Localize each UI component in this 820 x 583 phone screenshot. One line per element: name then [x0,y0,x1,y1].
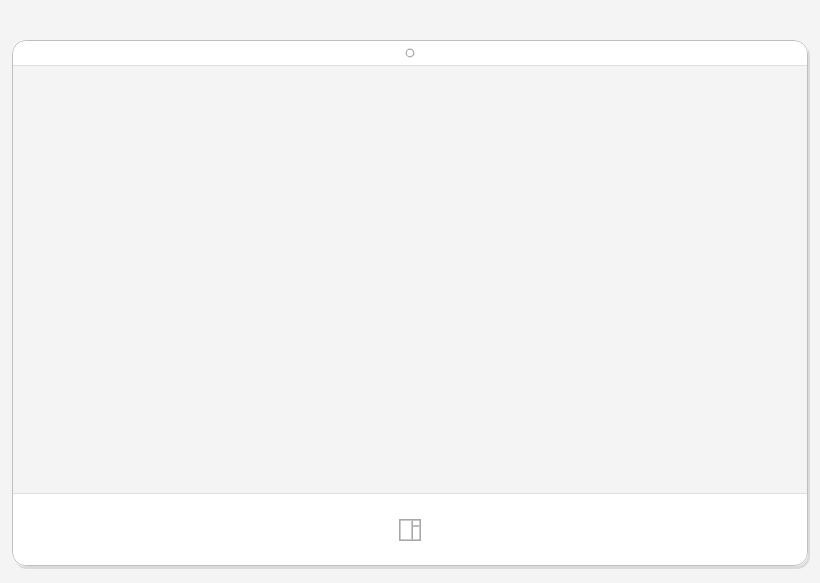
button[interactable]: Layout [395,515,425,545]
